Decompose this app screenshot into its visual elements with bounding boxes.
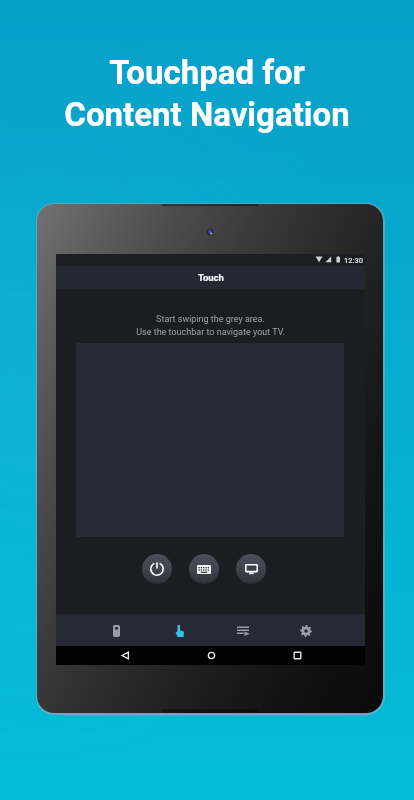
button[interactable]: Power xyxy=(142,554,172,584)
button[interactable]: Remote xyxy=(107,621,126,640)
button[interactable]: Settings xyxy=(296,621,315,640)
staticText: Touchpad for xyxy=(109,53,305,92)
button[interactable]: TV xyxy=(236,554,266,584)
staticText: Touch xyxy=(198,272,224,283)
staticText: Content Navigation xyxy=(64,95,350,134)
button[interactable]: Playlist xyxy=(233,621,252,640)
staticText: Start swiping the grey area. xyxy=(56,314,365,325)
button[interactable]: Home xyxy=(168,646,254,665)
staticText: 12:30 xyxy=(344,256,364,265)
button[interactable]: Recents xyxy=(254,646,340,665)
button[interactable]: Touchpad xyxy=(170,621,189,640)
button[interactable]: Keyboard xyxy=(189,554,219,584)
staticText: Use the touchbar to navigate yout TV. xyxy=(56,327,365,338)
button[interactable]: Back xyxy=(82,646,168,665)
